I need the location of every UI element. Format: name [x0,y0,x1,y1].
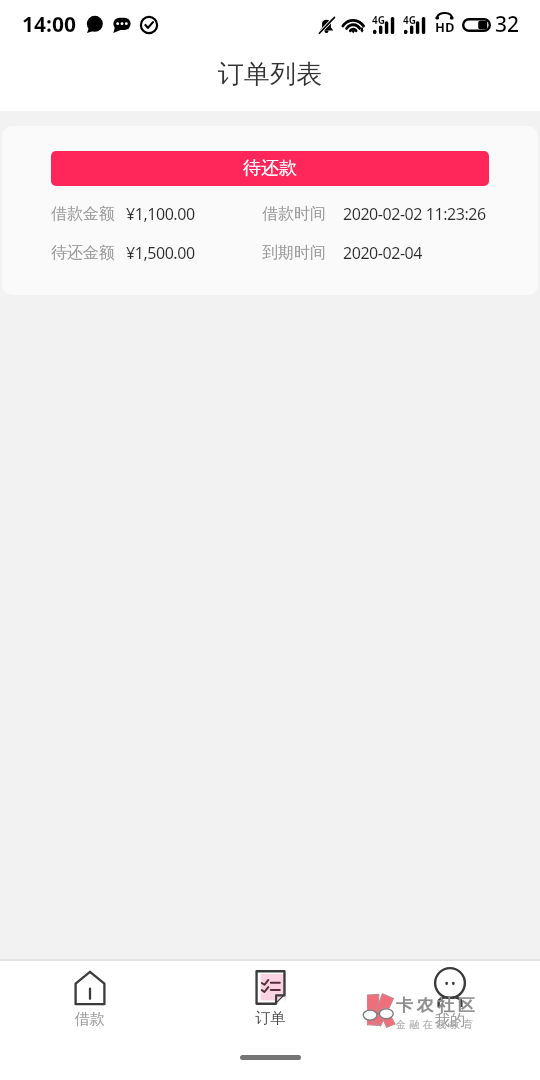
staticText: 借款金额 [51,204,115,224]
staticText: 借款时间 [262,204,326,224]
staticText: 2020-02-02 11:23:26 [343,203,486,225]
button[interactable]: Profile [360,961,540,1037]
staticText: 4G [403,13,416,27]
staticText: 32 [495,10,520,39]
staticText: 金融在线教育 [396,1018,477,1031]
staticText: ¥1,100.00 [126,203,195,225]
staticText: 到期时间 [262,243,326,263]
staticText: ¥1,500.00 [126,242,195,264]
staticText: 我的 [435,1011,465,1030]
staticText: 14:00 [22,10,76,39]
button[interactable]: Orders [180,961,360,1037]
staticText: 待还金额 [51,243,115,263]
button[interactable]: 待还款 [2,126,538,295]
staticText: 订单 [255,1009,285,1028]
button[interactable]: 待还款 [51,151,489,186]
staticText: 待还款 [243,157,297,180]
staticText: HD [435,18,454,36]
button[interactable]: Loans [0,961,180,1037]
staticText: 卡农社区 [396,995,479,1016]
staticText: 借款 [75,1010,105,1029]
staticText: 2020-02-04 [343,242,423,264]
staticText: 订单列表 [218,58,322,91]
staticText: 4G [372,13,385,27]
